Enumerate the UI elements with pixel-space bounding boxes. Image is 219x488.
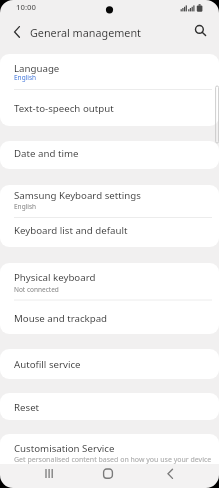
button[interactable] [6,23,24,41]
button[interactable] [0,218,219,247]
button[interactable] [0,434,219,467]
staticText: 10:00 [16,2,36,13]
button[interactable] [0,263,219,300]
staticText: General management [30,25,141,40]
staticText: Get personalised content based on how yo… [14,455,212,465]
button[interactable] [0,54,219,90]
staticText: Date and time [14,147,79,160]
staticText: Mouse and trackpad [14,312,108,325]
button[interactable] [0,300,219,334]
staticText: Language [14,62,60,75]
staticText: Text-to-speech output [14,102,114,115]
staticText: Keyboard list and default [14,224,128,237]
staticText: Samsung Keyboard settings [14,189,141,202]
staticText: Autofill service [14,358,81,371]
button[interactable] [0,185,219,218]
staticText: English [14,73,37,82]
staticText: Reset [14,401,40,414]
button[interactable] [0,349,219,379]
button[interactable] [94,464,124,488]
button[interactable] [0,90,219,126]
button[interactable] [156,464,186,488]
staticText: English [14,202,37,211]
button[interactable] [0,141,219,169]
button[interactable] [35,464,65,488]
staticText: Not connected [14,285,59,294]
button[interactable] [0,393,219,420]
button[interactable] [190,21,212,43]
staticText: Physical keyboard [14,271,96,284]
staticText: Customisation Service [14,442,115,455]
